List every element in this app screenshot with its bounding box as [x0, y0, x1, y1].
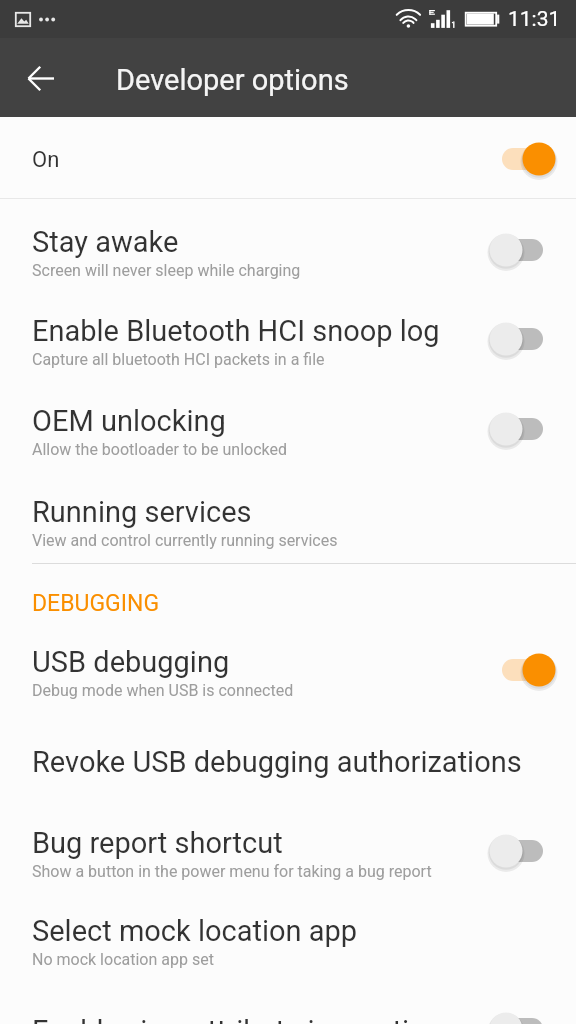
staticText: 11:31 — [508, 7, 561, 32]
staticText: On — [32, 147, 60, 173]
staticText: Bug report shortcut — [32, 826, 283, 860]
button[interactable]: OEM unlocking — [0, 384, 576, 474]
button[interactable]: USB debugging — [0, 625, 576, 715]
staticText: Debug mode when USB is connected — [32, 681, 294, 700]
staticText: View and control currently running servi… — [32, 531, 338, 550]
button[interactable]: Switch off — [486, 827, 558, 875]
staticText: No mock location app set — [32, 950, 214, 969]
button[interactable]: Navigate up — [13, 50, 69, 106]
staticText: Stay awake — [32, 225, 179, 259]
button[interactable]: Switch on — [486, 646, 558, 694]
button[interactable]: Enable view attribute inspection — [0, 994, 576, 1024]
staticText: DEBUGGING — [32, 590, 160, 617]
button[interactable]: Stay awake — [0, 205, 576, 295]
button[interactable]: Select mock location app — [0, 894, 576, 984]
button[interactable]: Switch off — [486, 226, 558, 274]
button[interactable]: Enable Bluetooth HCI snoop log — [0, 294, 576, 384]
button[interactable]: Switch off — [486, 405, 558, 453]
staticText: Allow the bootloader to be unlocked — [32, 440, 288, 459]
staticText: Developer options — [116, 63, 349, 97]
staticText: Enable Bluetooth HCI snoop log — [32, 314, 440, 348]
button[interactable]: DEBUGGING — [0, 571, 576, 623]
staticText: OEM unlocking — [32, 404, 226, 438]
staticText: Screen will never sleep while charging — [32, 261, 301, 280]
button[interactable]: Switch off — [486, 1005, 558, 1024]
staticText: Enable view attribute inspection — [32, 1014, 442, 1024]
button[interactable]: Running services — [0, 475, 576, 565]
staticText: Revoke USB debugging authorizations — [32, 745, 522, 779]
staticText: Capture all bluetooth HCI packets in a f… — [32, 350, 325, 369]
button[interactable]: Revoke USB debugging authorizations — [0, 725, 576, 787]
button[interactable]: Bug report shortcut — [0, 806, 576, 896]
button[interactable]: Switch on — [486, 135, 558, 183]
staticText: Running services — [32, 495, 252, 529]
button[interactable]: Switch off — [486, 315, 558, 363]
staticText: Select mock location app — [32, 914, 358, 948]
staticText: USB debugging — [32, 645, 230, 679]
button[interactable]: On — [0, 117, 576, 197]
staticText: Show a button in the power menu for taki… — [32, 862, 432, 881]
